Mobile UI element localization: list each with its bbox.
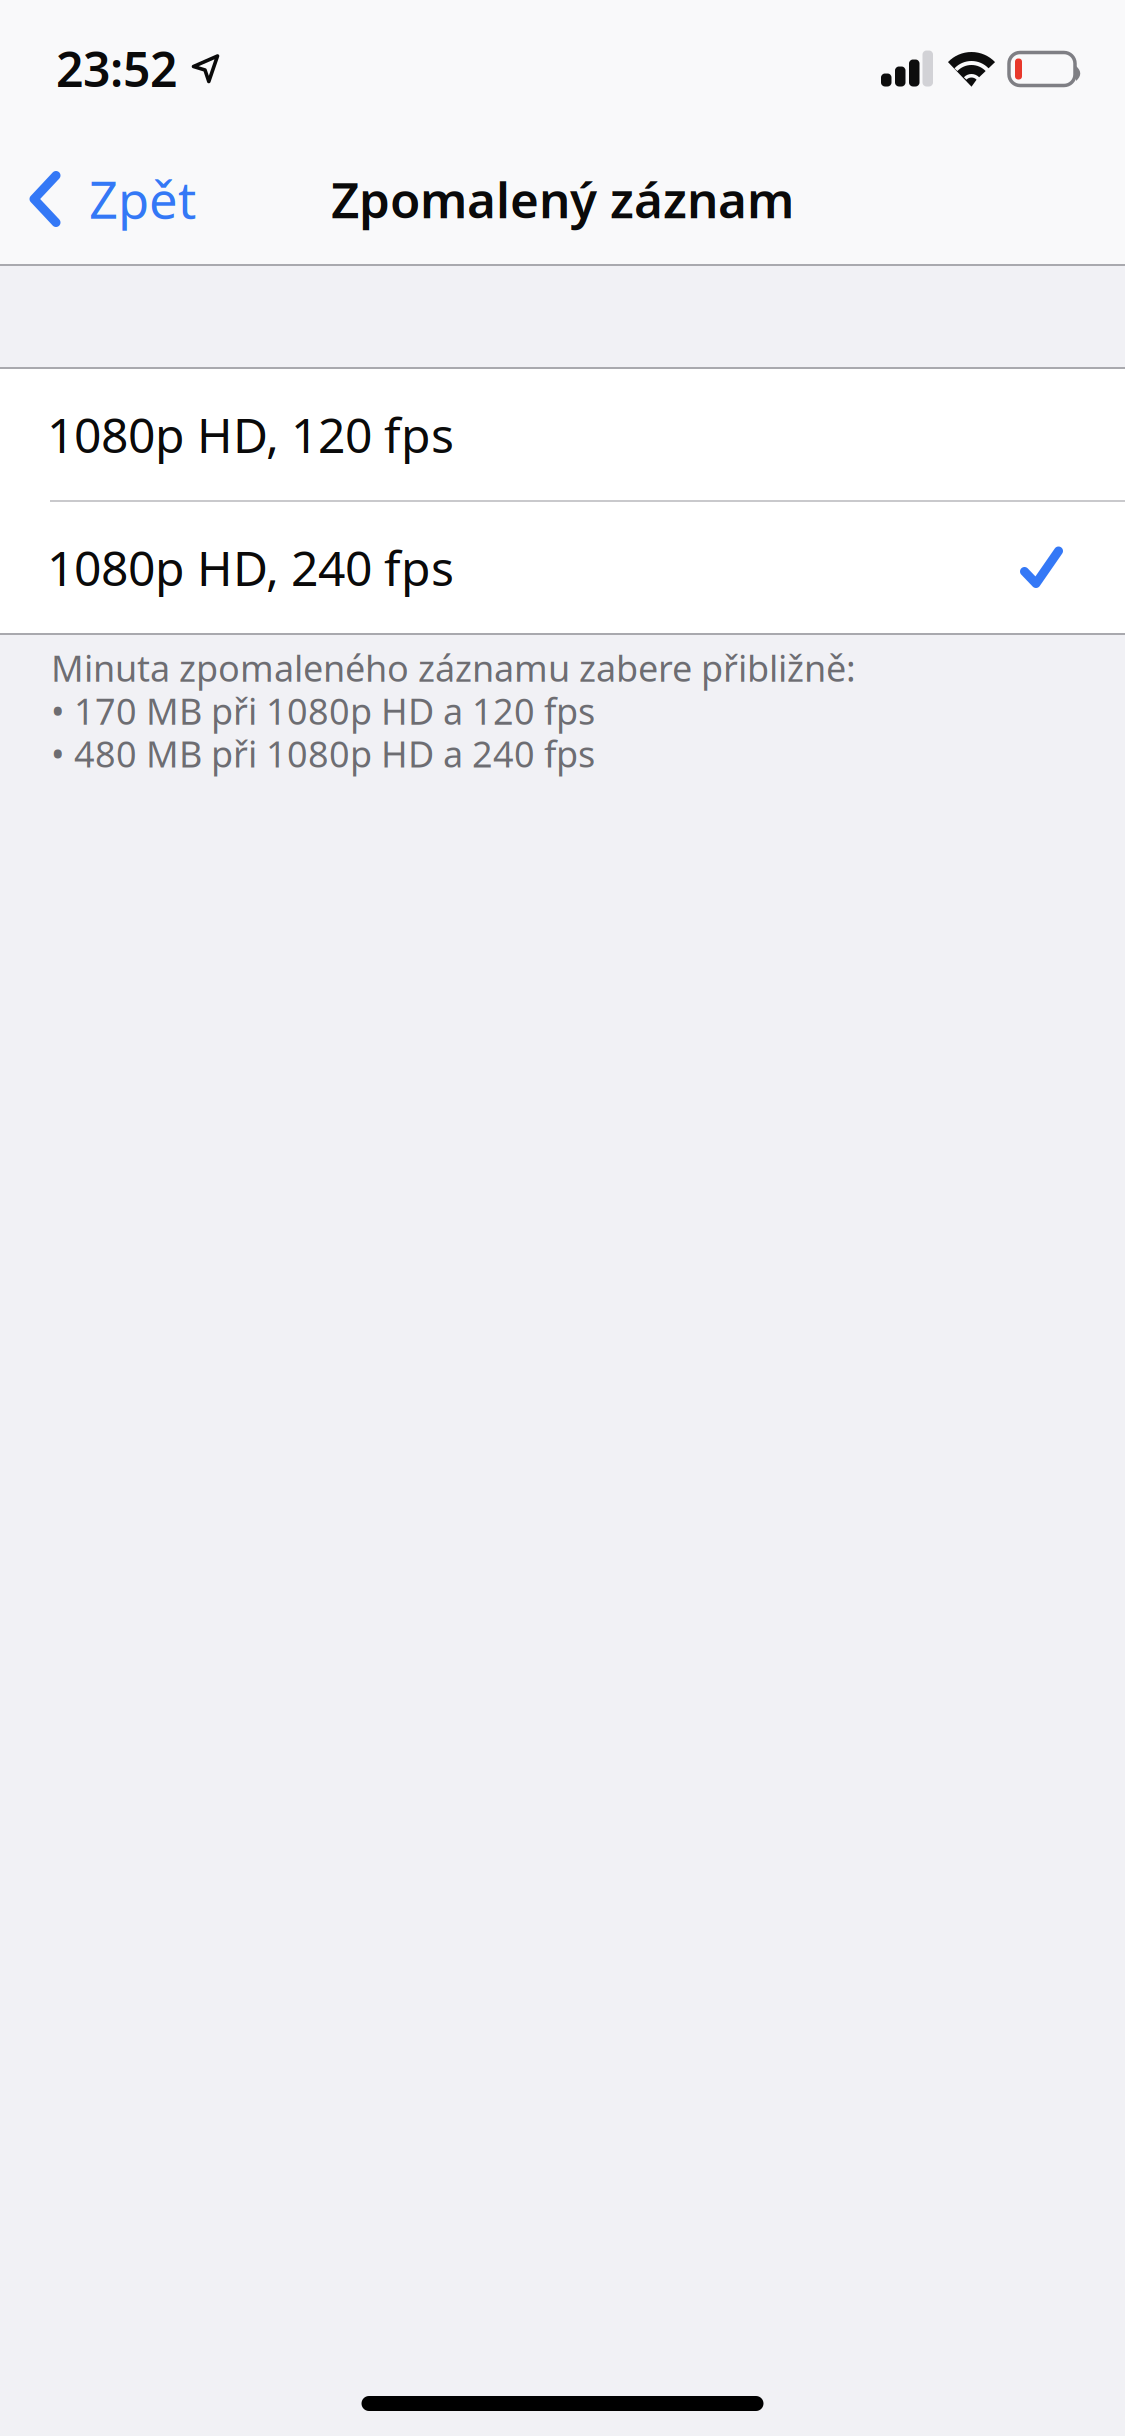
- staticText: 1080p HD, 240 fps: [47, 536, 454, 599]
- staticText: Minuta zpomaleného záznamu zabere přibli…: [51, 644, 856, 692]
- button[interactable]: Zpět: [0, 134, 218, 264]
- button[interactable]: 1080p HD, 240 fps: [0, 502, 1125, 633]
- staticText: 23:52: [56, 37, 177, 100]
- staticText: Zpět: [89, 165, 196, 233]
- staticText: • 170 MB při 1080p HD a 120 fps: [51, 687, 595, 735]
- staticText: 1080p HD, 120 fps: [47, 403, 454, 466]
- staticText: • 480 MB při 1080p HD a 240 fps: [51, 730, 595, 777]
- staticText: Zpomalený záznam: [331, 166, 794, 232]
- button[interactable]: 1080p HD, 120 fps: [0, 369, 1125, 500]
